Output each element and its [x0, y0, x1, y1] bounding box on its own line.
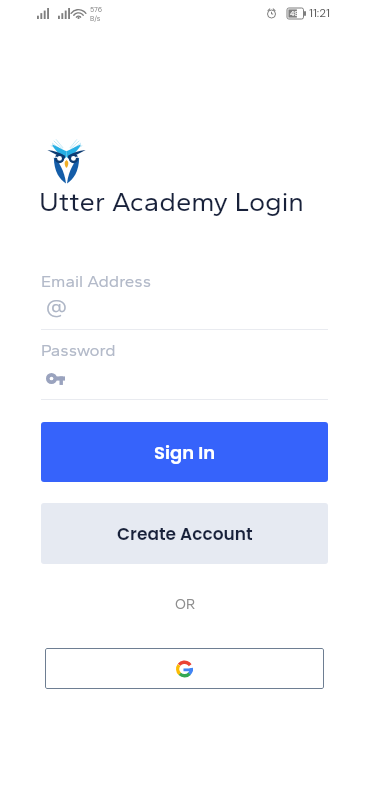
staticText: Create Account — [117, 522, 253, 546]
staticText: 576 — [90, 5, 103, 14]
button[interactable]: Sign In — [41, 422, 328, 482]
staticText: OR — [175, 596, 195, 613]
staticText: 11:21 — [309, 6, 330, 21]
staticText: Utter Academy Login — [39, 185, 305, 218]
staticText: @ — [46, 293, 67, 321]
staticText: B/s — [90, 14, 101, 23]
staticText: Sign In — [154, 440, 216, 465]
staticText: Email Address — [41, 271, 152, 291]
button[interactable]: Sign in with Google — [45, 648, 324, 689]
staticText: 49 — [290, 9, 299, 18]
button[interactable]: Create Account — [41, 503, 328, 564]
staticText: Password — [41, 340, 116, 360]
